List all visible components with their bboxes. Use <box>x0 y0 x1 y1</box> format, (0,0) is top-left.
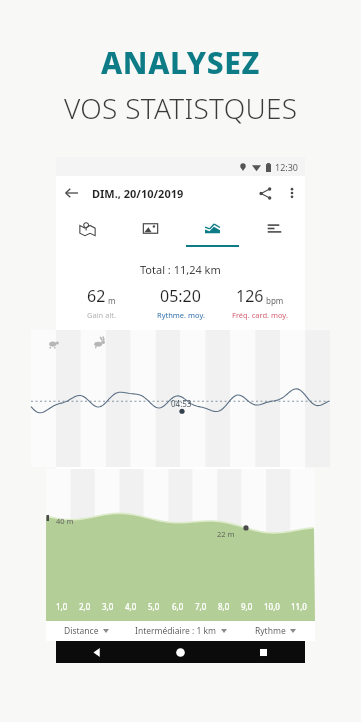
staticText: 6,0 <box>172 601 184 612</box>
staticText: 3,0 <box>102 601 114 612</box>
button[interactable]: Charts tab <box>181 210 243 247</box>
button[interactable]: Photos tab <box>119 210 181 247</box>
staticText: 8,0 <box>218 601 230 612</box>
button[interactable]: Rythme <box>235 621 315 641</box>
button[interactable]: Intermédiaire : 1 km <box>127 621 235 641</box>
staticText: Distance <box>64 625 99 637</box>
button[interactable]: Splits tab <box>243 210 305 247</box>
staticText: 62 <box>87 285 106 307</box>
staticText: 05:20 <box>160 285 201 307</box>
button[interactable]: Map tab <box>56 210 119 247</box>
staticText: ANALYSEZ <box>101 42 260 83</box>
staticText: 1,0 <box>56 601 68 612</box>
button[interactable]: Recents <box>222 641 305 663</box>
button[interactable]: Back <box>56 178 86 208</box>
staticText: 126 <box>236 285 264 307</box>
staticText: 2,0 <box>79 601 91 612</box>
staticText: Intermédiaire : 1 km <box>135 625 217 637</box>
staticText: 4,0 <box>125 601 137 612</box>
staticText: Fréq. card. moy. <box>232 310 288 320</box>
staticText: Gain alt. <box>87 310 117 320</box>
button[interactable]: More options <box>279 180 305 206</box>
button[interactable]: Total : 11,24 km <box>62 253 299 325</box>
staticText: Rythme <box>255 625 286 637</box>
staticText: bpm <box>266 295 284 306</box>
staticText: 10,0 <box>264 601 280 612</box>
staticText: 9,0 <box>241 601 253 612</box>
staticText: VOS STATISTQUES <box>64 89 298 127</box>
staticText: 12:30 <box>275 161 299 173</box>
staticText: 22 m <box>217 529 235 539</box>
button[interactable]: Share <box>251 179 279 207</box>
button[interactable]: Distance <box>46 621 127 641</box>
button[interactable]: Back <box>56 641 139 663</box>
staticText: 7,0 <box>195 601 207 612</box>
staticText: m <box>108 295 116 306</box>
staticText: 11,0 <box>291 601 307 612</box>
button[interactable]: 40 m <box>46 469 315 621</box>
staticText: 04:53 <box>171 398 192 409</box>
staticText: Rythme. moy. <box>157 310 205 320</box>
staticText: 40 m <box>56 516 74 526</box>
button[interactable]: 04:53 <box>31 330 330 467</box>
staticText: 5,0 <box>148 601 160 612</box>
staticText: Total : 11,24 km <box>140 262 221 277</box>
staticText: DIM., 20/10/2019 <box>92 186 184 201</box>
button[interactable]: Home <box>139 641 222 663</box>
